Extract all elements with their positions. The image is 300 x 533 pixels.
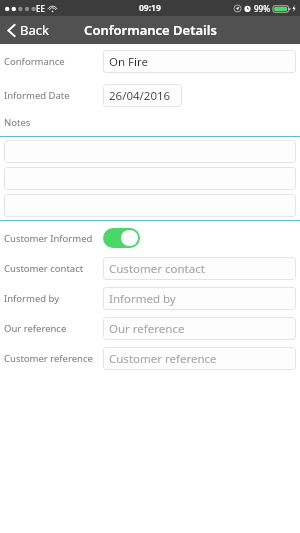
staticText: Conformance [4, 55, 103, 68]
button[interactable]: Customer Informed toggle [103, 228, 140, 248]
staticText: 26/04/2016 [109, 88, 171, 104]
button[interactable]: Back [0, 16, 59, 44]
button[interactable]: Our reference [103, 317, 296, 340]
staticText: Our reference [4, 322, 103, 335]
button[interactable]: Customer contact [103, 257, 296, 280]
staticText: Our reference [109, 321, 185, 337]
button[interactable] [4, 167, 296, 190]
staticText: On Fire [109, 54, 149, 70]
staticText: Back [20, 21, 49, 39]
button[interactable]: On Fire [103, 50, 296, 73]
staticText: 09:19 [139, 2, 161, 14]
staticText: Informed Date [4, 89, 103, 102]
staticText: Notes [4, 116, 31, 129]
staticText: EE [36, 3, 45, 14]
staticText: Customer Informed [4, 232, 103, 245]
staticText: Customer reference [109, 351, 217, 367]
staticText: Informed by [4, 292, 103, 305]
staticText: Customer contact [4, 262, 103, 275]
staticText: Informed by [109, 291, 176, 307]
button[interactable]: 26/04/2016 [103, 84, 182, 107]
button[interactable] [4, 194, 296, 217]
button[interactable]: Customer reference [103, 347, 296, 370]
staticText: Customer reference [4, 352, 103, 365]
staticText: Conformance Details [84, 21, 217, 39]
staticText: Customer contact [109, 261, 205, 277]
button[interactable]: Informed by [103, 287, 296, 310]
button[interactable] [4, 140, 296, 163]
staticText: 99% [254, 3, 270, 14]
